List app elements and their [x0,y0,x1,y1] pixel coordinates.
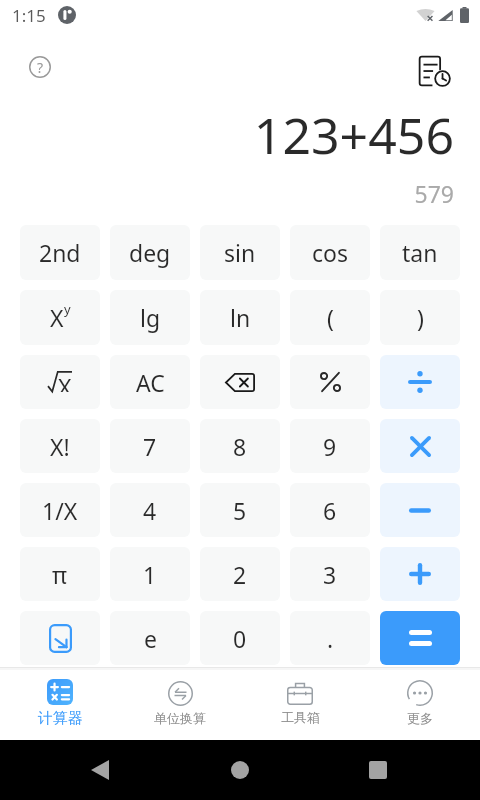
button[interactable]: e [110,611,190,665]
staticText: . [327,623,334,654]
staticText: 123+456 [26,101,454,169]
staticText: 1/X [42,495,78,526]
button[interactable]: Backspace [200,355,280,409]
staticText: 0 [233,623,247,654]
staticText: 1 [143,559,157,590]
button[interactable]: Help [21,48,59,86]
staticText: 5 [233,495,247,526]
button[interactable]: Minus [380,483,460,537]
staticText: AC [136,367,165,398]
button[interactable]: History [415,52,455,92]
button[interactable]: X! [20,419,100,473]
button[interactable]: 5 [200,483,280,537]
staticText: ln [230,302,251,333]
button[interactable]: 7 [110,419,190,473]
staticText: 单位换算 [154,710,206,726]
button[interactable]: . [290,611,370,665]
button[interactable]: AC [110,355,190,409]
button[interactable]: 1 [110,547,190,601]
staticText: 9 [323,431,337,462]
button[interactable]: 2 [200,547,280,601]
staticText: 计算器 [38,709,83,728]
staticText: X [58,371,72,392]
staticText: deg [129,237,171,268]
button[interactable]: 更多 [360,670,480,736]
staticText: sin [224,237,256,268]
button[interactable]: lg [110,290,190,345]
staticText: tan [402,237,438,268]
staticText: y [64,300,71,318]
button[interactable]: sin [200,225,280,280]
button[interactable]: π [20,547,100,601]
button[interactable]: 0 [200,611,280,665]
staticText: 更多 [407,710,433,726]
staticText: 2 [233,559,247,590]
staticText: π [52,559,68,590]
button[interactable]: 4 [110,483,190,537]
button[interactable]: 计算器 [0,670,120,736]
button[interactable]: ) [380,290,460,345]
button[interactable]: Square root [20,355,100,409]
button[interactable]: 8 [200,419,280,473]
staticText: X! [50,431,70,462]
staticText: 579 [26,178,454,209]
staticText: ) [417,302,424,333]
button[interactable]: tan [380,225,460,280]
button[interactable]: 3 [290,547,370,601]
button[interactable]: deg [110,225,190,280]
button[interactable]: Hide keypad [20,611,100,665]
button[interactable]: 6 [290,483,370,537]
staticText: 6 [323,495,337,526]
button[interactable]: % [290,355,370,409]
button[interactable]: Power [20,290,100,345]
button[interactable]: 1/X [20,483,100,537]
staticText: X [50,302,64,333]
staticText: lg [140,302,161,333]
button[interactable]: Divide [380,355,460,409]
staticText: ( [327,302,334,333]
button[interactable]: 工具箱 [240,670,360,736]
staticText: cos [312,237,348,268]
staticText: 8 [233,431,247,462]
staticText: 2nd [39,237,81,268]
button[interactable]: Equals [380,611,460,665]
staticText: 4 [143,495,157,526]
button[interactable]: 2nd [20,225,100,280]
staticText: ? [37,58,44,77]
button[interactable]: Multiply [380,419,460,473]
staticText: 1:15 [12,4,46,27]
button[interactable]: ln [200,290,280,345]
button[interactable]: cos [290,225,370,280]
button[interactable]: ( [290,290,370,345]
button[interactable]: 9 [290,419,370,473]
staticText: 3 [323,559,337,590]
staticText: 工具箱 [281,709,320,725]
staticText: e [144,623,157,654]
staticText: 7 [143,431,157,462]
button[interactable]: 单位换算 [120,670,240,736]
button[interactable]: Plus [380,547,460,601]
